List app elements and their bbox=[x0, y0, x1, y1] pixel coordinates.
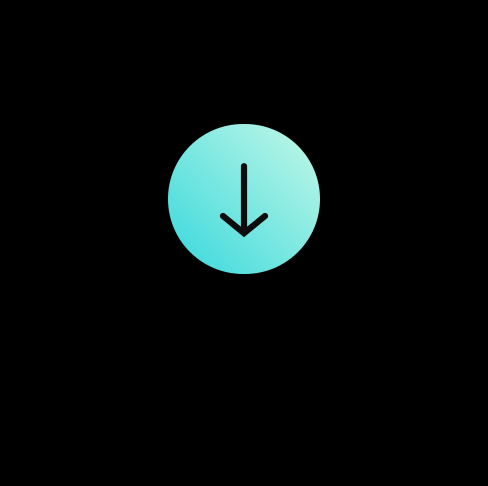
button[interactable]: Download bbox=[168, 124, 320, 274]
